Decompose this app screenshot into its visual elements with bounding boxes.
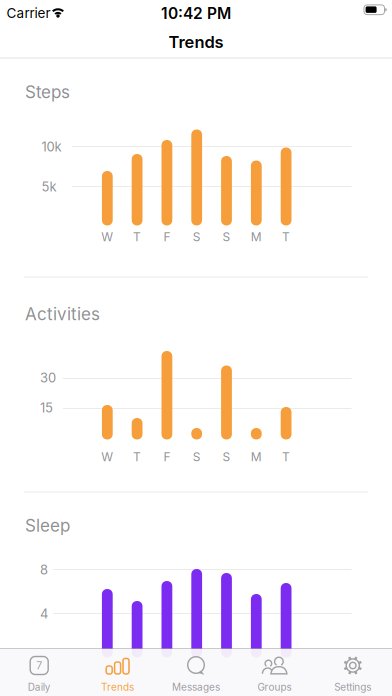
staticText: Trends xyxy=(168,32,223,52)
staticText: Groups xyxy=(257,681,291,693)
staticText: T xyxy=(133,230,141,244)
button[interactable]: Groups xyxy=(235,648,314,696)
staticText: F xyxy=(163,230,170,244)
staticText: M xyxy=(251,230,262,244)
staticText: 8 xyxy=(40,562,48,577)
staticText: 30 xyxy=(40,370,56,385)
staticText: 5k xyxy=(41,179,56,194)
staticText: T xyxy=(282,450,290,464)
staticText: Activities xyxy=(25,304,100,324)
staticText: Trends xyxy=(101,681,134,693)
staticText: S xyxy=(193,450,201,464)
staticText: Daily xyxy=(28,681,51,693)
staticText: Carrier xyxy=(6,5,50,21)
staticText: Steps xyxy=(25,82,70,102)
staticText: F xyxy=(163,450,170,464)
staticText: 4 xyxy=(40,606,48,621)
staticText: S xyxy=(222,230,230,244)
staticText: 10:42 PM xyxy=(161,4,231,23)
button[interactable]: Settings xyxy=(314,648,392,696)
staticText: W xyxy=(101,230,113,244)
staticText: Sleep xyxy=(25,515,70,536)
staticText: 10k xyxy=(41,139,61,154)
button[interactable]: 7 xyxy=(0,648,78,696)
staticText: 15 xyxy=(40,400,53,415)
staticText: W xyxy=(101,450,113,464)
button[interactable]: Messages xyxy=(157,648,235,696)
staticText: Settings xyxy=(334,681,371,693)
staticText: 7 xyxy=(36,659,42,672)
staticText: M xyxy=(251,450,262,464)
staticText: S xyxy=(193,230,201,244)
staticText: T xyxy=(133,450,141,464)
staticText: S xyxy=(222,450,230,464)
staticText: T xyxy=(282,230,290,244)
staticText: Messages xyxy=(172,681,220,693)
button[interactable]: Trends xyxy=(78,648,157,696)
